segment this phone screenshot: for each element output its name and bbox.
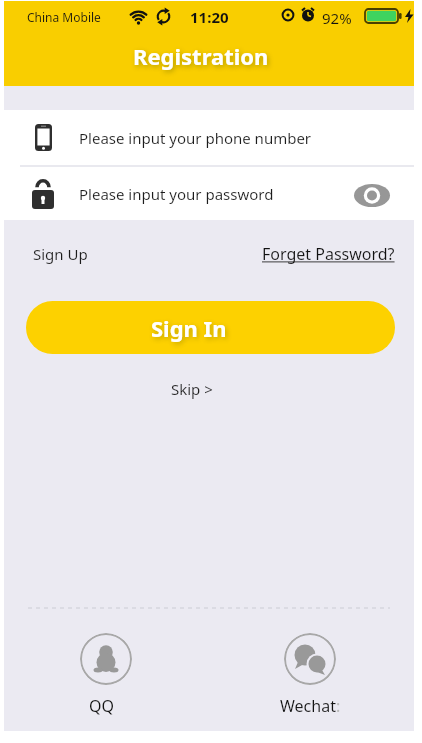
button[interactable]: Sign In: [26, 301, 395, 354]
button[interactable]: Forget Password?: [262, 243, 395, 265]
staticText: Please input your phone number: [79, 128, 312, 148]
button[interactable]: [80, 633, 132, 685]
button[interactable]: QQ: [89, 695, 114, 715]
staticText: China Mobile: [27, 9, 101, 25]
staticText: :: [336, 695, 341, 715]
button[interactable]: Skip >: [163, 377, 221, 401]
staticText: Registration: [133, 41, 269, 71]
staticText: 92%: [322, 8, 352, 28]
button[interactable]: Sign Up: [33, 244, 88, 264]
staticText: Sign In: [151, 313, 227, 343]
button[interactable]: Please input your password: [4, 167, 414, 220]
staticText: 11:20: [190, 7, 229, 27]
button[interactable]: [284, 633, 336, 685]
staticText: Please input your password: [79, 184, 274, 204]
button[interactable]: Please input your phone number: [4, 110, 414, 165]
button[interactable]: [354, 184, 390, 207]
button[interactable]: Wechat: [280, 695, 336, 715]
